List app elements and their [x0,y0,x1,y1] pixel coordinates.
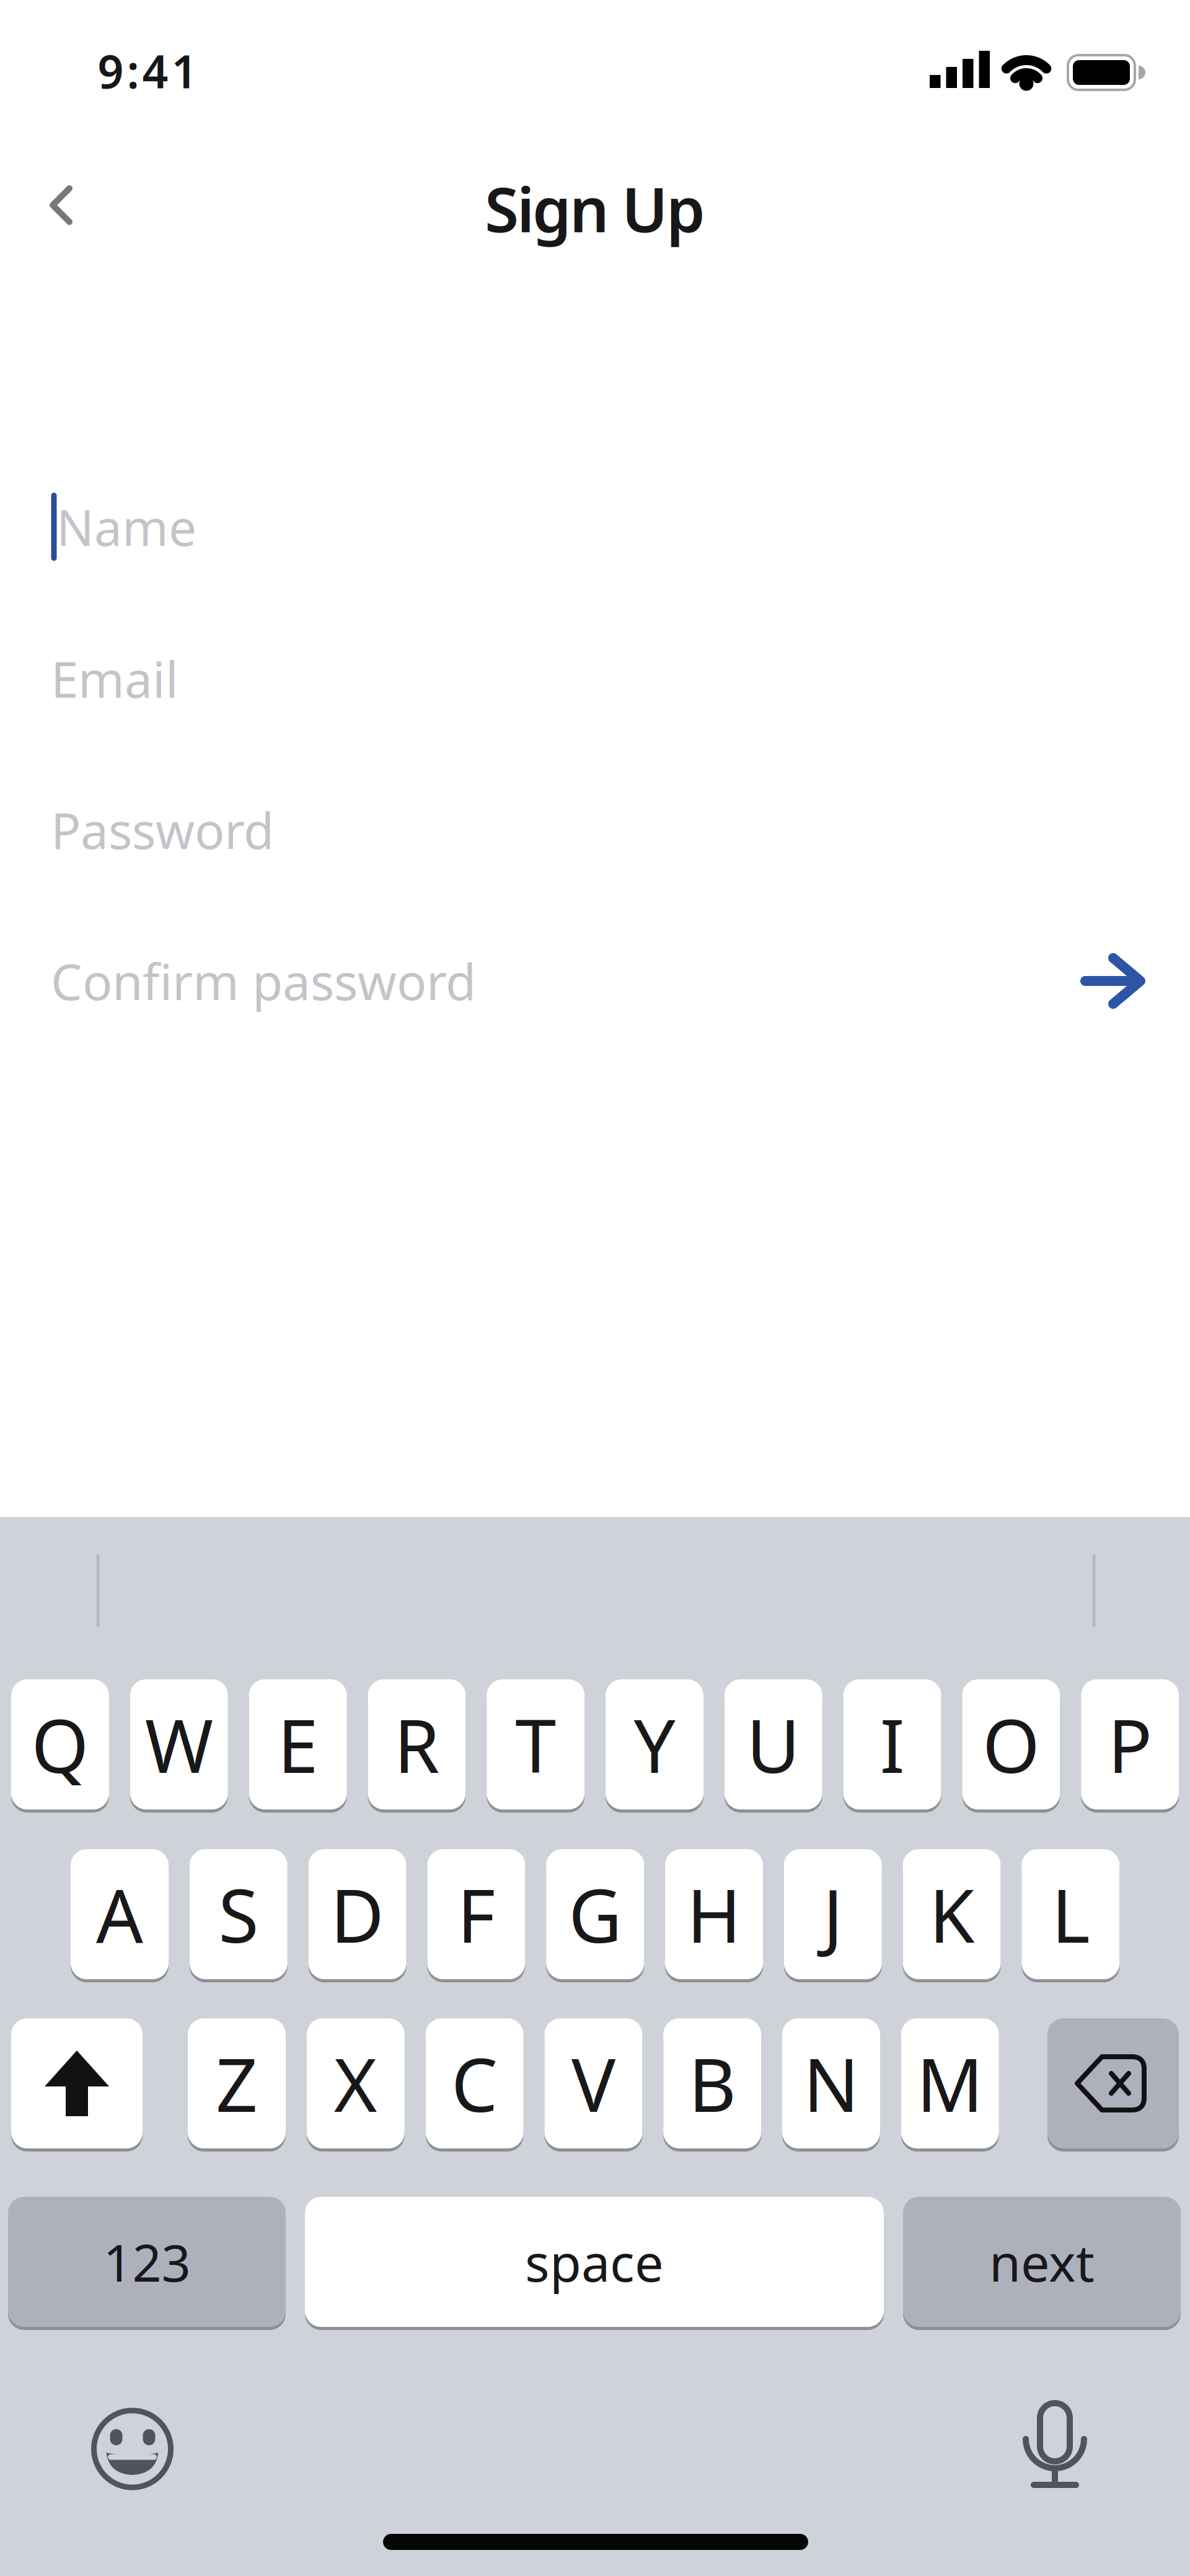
button[interactable]: G [546,1849,644,1979]
staticText: Sign Up [485,167,705,249]
staticText: M [917,2035,983,2132]
staticText: N [803,2035,859,2132]
button[interactable]: N [782,2018,880,2148]
staticText: Q [31,1696,89,1793]
staticText: D [330,1865,384,1963]
staticText: S [218,1865,259,1963]
button[interactable]: A [71,1849,169,1979]
button[interactable]: next [903,2197,1181,2327]
button[interactable]: Dictate [1014,2404,1096,2491]
button[interactable]: F [427,1849,525,1979]
button[interactable]: B [663,2018,761,2148]
staticText: B [688,2035,736,2132]
staticText: A [96,1865,143,1963]
staticText: X [334,2035,377,2132]
button[interactable]: L [1022,1849,1120,1979]
staticText: L [1051,1865,1090,1963]
staticText: G [568,1865,622,1963]
staticText: Z [216,2035,258,2132]
button[interactable]: P [1081,1679,1179,1809]
button[interactable]: Q [11,1679,109,1809]
staticText: Y [634,1696,675,1793]
button[interactable]: C [426,2018,523,2148]
button[interactable]: R [368,1679,466,1809]
staticText: P [1108,1696,1152,1793]
staticText: H [687,1865,741,1963]
button[interactable]: H [665,1849,763,1979]
button[interactable]: 123 [8,2197,286,2327]
button[interactable]: Shift [11,2018,143,2148]
button[interactable]: K [903,1849,1001,1979]
staticText: I [880,1696,905,1793]
button[interactable]: D [308,1849,406,1979]
button[interactable]: U [724,1679,822,1809]
staticText: K [929,1865,974,1963]
button[interactable]: I [843,1679,941,1809]
staticText: R [394,1696,440,1793]
button[interactable]: V [544,2018,642,2148]
staticText: next [989,2228,1095,2296]
staticText: Email [51,646,178,711]
button[interactable]: Submit [1076,944,1150,1018]
button[interactable]: Back [11,157,110,253]
button[interactable]: J [784,1849,882,1979]
staticText: 9:41 [98,40,197,101]
button[interactable]: Confirm password [51,916,1139,1046]
button[interactable]: space [305,2197,884,2327]
button[interactable]: Password [51,765,1139,895]
button[interactable]: S [190,1849,287,1979]
staticText: C [451,2035,498,2132]
staticText: W [145,1696,213,1793]
button[interactable]: E [249,1679,347,1809]
staticText: T [515,1696,556,1793]
staticText: V [571,2035,615,2132]
button[interactable]: Name [51,462,1139,592]
button[interactable]: M [901,2018,999,2148]
staticText: E [277,1696,318,1793]
button[interactable]: X [307,2018,405,2148]
staticText: Password [51,797,274,863]
button[interactable]: Delete [1047,2018,1179,2148]
button[interactable]: Email [51,613,1139,744]
button[interactable]: Emoji [91,2408,173,2490]
button[interactable]: T [487,1679,585,1809]
staticText: space [525,2228,664,2296]
staticText: Name [56,494,196,560]
button[interactable]: Z [188,2018,286,2148]
staticText: O [982,1696,1040,1793]
staticText: J [823,1865,843,1963]
staticText: 123 [103,2228,191,2296]
staticText: F [457,1865,495,1963]
staticText: Confirm password [51,948,476,1014]
button[interactable]: Y [606,1679,703,1809]
staticText: U [746,1696,800,1793]
button[interactable]: O [962,1679,1060,1809]
button[interactable]: W [130,1679,228,1809]
